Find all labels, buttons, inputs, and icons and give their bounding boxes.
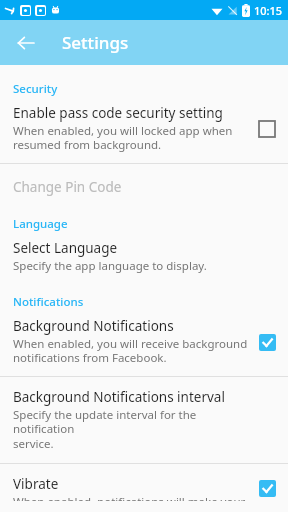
button[interactable]: Vibrate [0, 464, 288, 512]
staticText: Language [13, 216, 288, 232]
button[interactable]: Background Notifications [0, 317, 288, 376]
button[interactable]: Enable pass code security setting [0, 104, 288, 163]
button[interactable]: Toggle [250, 475, 284, 501]
staticText: When enabled, you will locked app when r… [13, 123, 233, 153]
button[interactable]: Toggle [250, 112, 284, 146]
staticText: Background Notifications interval [13, 388, 225, 406]
staticText: Specify the app language to display. [13, 258, 207, 274]
staticText: When enabled, notifications will make yo… [13, 494, 246, 501]
button[interactable]: Background Notifications interval [0, 377, 288, 463]
staticText: Enable pass code security setting [13, 104, 223, 122]
staticText: Change Pin Code [13, 178, 122, 196]
staticText: 10:15 [254, 3, 283, 18]
button[interactable]: Change Pin Code [0, 164, 288, 210]
staticText: Specify the update interval for the noti… [13, 407, 254, 452]
staticText: Vibrate [13, 475, 59, 493]
staticText: Settings [62, 31, 129, 54]
button[interactable]: Select Language [0, 239, 288, 284]
button[interactable]: Toggle [250, 325, 284, 359]
button[interactable]: Back [8, 25, 44, 61]
staticText: Notifications [13, 294, 288, 310]
staticText: Security [13, 81, 288, 97]
staticText: Select Language [13, 239, 118, 257]
staticText: Background Notifications [13, 317, 174, 335]
staticText: When enabled, you will receive backgroun… [13, 336, 248, 366]
